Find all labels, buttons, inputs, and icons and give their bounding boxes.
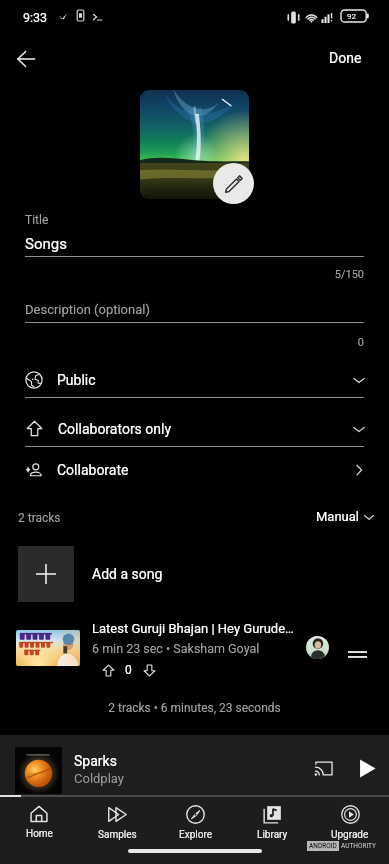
- button[interactable]: Explore: [156, 797, 234, 842]
- staticText: Public: [57, 372, 96, 388]
- button[interactable]: Samples: [78, 797, 156, 842]
- staticText: Sparks: [74, 753, 117, 769]
- staticText: Description (optional): [25, 302, 150, 317]
- button[interactable]: Collaborate: [18, 452, 371, 487]
- button[interactable]: Cast: [310, 755, 336, 781]
- button[interactable]: Library: [233, 797, 311, 842]
- button[interactable]: Public: [18, 362, 371, 397]
- staticText: Home: [26, 828, 53, 840]
- button[interactable]: Sparks: [0, 735, 389, 797]
- staticText: 9:33: [23, 10, 48, 25]
- staticText: Coldplay: [74, 771, 124, 786]
- staticText: Collaborate: [57, 462, 129, 478]
- button[interactable]: Downvote: [140, 661, 158, 679]
- button[interactable]: Latest Guruji Bhajan | Hey Gurude…: [0, 612, 389, 688]
- button[interactable]: Back: [8, 41, 44, 77]
- button[interactable]: Play: [353, 755, 379, 781]
- staticText: 0: [125, 663, 132, 677]
- staticText: Manual: [316, 509, 359, 524]
- button[interactable]: Upvote: [99, 661, 117, 679]
- staticText: Samples: [98, 829, 137, 841]
- button[interactable]: Collaborators only: [18, 411, 371, 446]
- staticText: 2 tracks: [18, 511, 61, 525]
- staticText: Collaborators only: [58, 421, 172, 437]
- button[interactable]: Done: [321, 45, 370, 71]
- staticText: 6 min 23 sec • Saksham Goyal: [92, 641, 322, 656]
- staticText: Songs: [25, 235, 67, 253]
- staticText: Upgrade: [331, 829, 369, 841]
- staticText: Library: [257, 829, 288, 841]
- staticText: 92: [347, 12, 356, 21]
- staticText: 0: [300, 336, 364, 349]
- staticText: Explore: [179, 829, 212, 841]
- button[interactable]: Upgrade: [311, 797, 389, 842]
- button[interactable]: Manual: [310, 505, 382, 528]
- staticText: 2 tracks • 6 minutes, 23 seconds: [0, 701, 389, 715]
- staticText: ANDROID: [309, 842, 337, 850]
- button[interactable]: Change thumbnail: [213, 163, 254, 204]
- staticText: Done: [329, 50, 362, 66]
- button[interactable]: Home: [0, 797, 78, 842]
- button[interactable]: Add a song: [0, 546, 389, 602]
- staticText: Add a song: [92, 566, 163, 582]
- button[interactable]: Reorder: [346, 643, 368, 665]
- staticText: Latest Guruji Bhajan | Hey Gurude…: [92, 621, 294, 636]
- staticText: 5/150: [300, 268, 364, 281]
- staticText: Title: [25, 213, 49, 227]
- staticText: AUTHORITY: [341, 842, 376, 850]
